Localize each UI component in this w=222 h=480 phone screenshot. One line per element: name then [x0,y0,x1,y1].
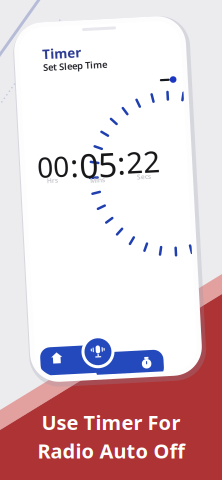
staticText: Timer [50,42,89,60]
staticText: : [72,143,80,184]
staticText: Mins [91,175,106,184]
staticText: Radio Auto Off [37,438,184,464]
staticText: Use Timer For [41,409,180,436]
staticText: : [119,143,127,184]
staticText: 00 [39,145,71,182]
staticText: Hrs [48,173,59,182]
staticText: 22 [128,144,162,183]
staticText: Set Sleep Time [50,58,114,70]
staticText: Secs [138,174,152,183]
button[interactable]: Record [73,334,106,367]
staticText: 05 [81,142,119,186]
button[interactable]: Home [32,344,98,372]
button[interactable]: Timer [87,352,155,380]
